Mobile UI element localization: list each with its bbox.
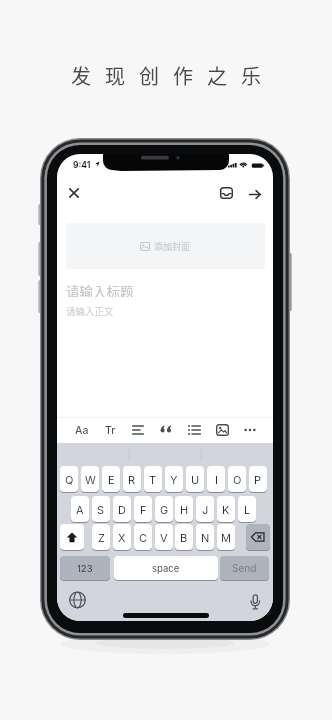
button[interactable]: Tr bbox=[99, 420, 121, 440]
staticText: J bbox=[202, 503, 209, 516]
staticText: 创 bbox=[139, 61, 159, 89]
staticText: space bbox=[152, 563, 180, 574]
button[interactable]: S bbox=[92, 496, 110, 522]
button[interactable]: J bbox=[196, 496, 214, 522]
button[interactable]: R bbox=[123, 466, 141, 492]
button[interactable]: 123 bbox=[60, 556, 110, 580]
button[interactable]: Z bbox=[92, 524, 110, 550]
staticText: C bbox=[139, 531, 148, 544]
staticText: 之 bbox=[207, 61, 227, 89]
staticText: F bbox=[140, 503, 147, 516]
staticText: H bbox=[180, 503, 189, 516]
button[interactable]: 添加封面 bbox=[66, 223, 265, 269]
staticText: Send bbox=[232, 562, 257, 574]
staticText: Z bbox=[98, 531, 105, 544]
staticText: I bbox=[215, 473, 218, 486]
staticText: 9:41 bbox=[73, 160, 91, 170]
button[interactable] bbox=[155, 418, 177, 440]
button[interactable] bbox=[65, 184, 83, 202]
button[interactable]: O bbox=[228, 466, 246, 492]
button[interactable]: space bbox=[114, 556, 218, 580]
button[interactable]: E bbox=[102, 466, 120, 492]
staticText: 请输入正文 bbox=[66, 304, 114, 316]
staticText: Tr bbox=[105, 424, 116, 437]
staticText: A bbox=[76, 503, 84, 516]
button[interactable] bbox=[239, 420, 261, 440]
button[interactable]: G bbox=[155, 496, 173, 522]
button[interactable]: X bbox=[113, 524, 131, 550]
button[interactable]: Send bbox=[220, 556, 269, 580]
button[interactable]: P bbox=[249, 466, 267, 492]
button[interactable] bbox=[217, 185, 235, 201]
button[interactable] bbox=[211, 420, 233, 440]
button[interactable]: B bbox=[175, 524, 193, 550]
staticText: 发 bbox=[71, 61, 91, 89]
button[interactable]: C bbox=[134, 524, 152, 550]
staticText: 乐 bbox=[241, 61, 261, 89]
button[interactable]: I bbox=[207, 466, 225, 492]
staticText: W bbox=[85, 473, 96, 486]
staticText: Y bbox=[170, 473, 178, 486]
staticText: O bbox=[233, 473, 242, 486]
staticText: 现 bbox=[105, 61, 125, 89]
staticText: M bbox=[221, 531, 231, 544]
staticText: 123 bbox=[77, 563, 93, 574]
button[interactable] bbox=[246, 186, 264, 202]
button[interactable] bbox=[60, 524, 84, 550]
staticText: R bbox=[128, 473, 136, 486]
staticText: N bbox=[201, 531, 210, 544]
staticText: P bbox=[254, 473, 262, 486]
staticText: T bbox=[149, 473, 157, 486]
button[interactable]: H bbox=[175, 496, 193, 522]
staticText: V bbox=[160, 531, 168, 544]
staticText: D bbox=[118, 503, 126, 516]
button[interactable]: A bbox=[71, 496, 89, 522]
staticText: L bbox=[244, 503, 251, 516]
button[interactable]: T bbox=[144, 466, 162, 492]
staticText: B bbox=[180, 531, 188, 544]
staticText: K bbox=[222, 503, 230, 516]
button[interactable]: D bbox=[113, 496, 131, 522]
button[interactable]: M bbox=[217, 524, 235, 550]
staticText: 作 bbox=[173, 61, 193, 89]
staticText: Aa bbox=[75, 424, 89, 437]
staticText: S bbox=[97, 503, 105, 516]
button[interactable] bbox=[246, 524, 270, 550]
staticText: X bbox=[118, 531, 126, 544]
staticText: 请输入标题 bbox=[66, 281, 134, 297]
button[interactable] bbox=[127, 420, 149, 440]
button[interactable]: W bbox=[81, 466, 99, 492]
button[interactable]: Y bbox=[165, 466, 183, 492]
button[interactable]: V bbox=[155, 524, 173, 550]
button[interactable]: Q bbox=[60, 466, 78, 492]
staticText: Q bbox=[65, 473, 74, 486]
button[interactable]: L bbox=[238, 496, 256, 522]
button[interactable]: F bbox=[134, 496, 152, 522]
button[interactable]: K bbox=[217, 496, 235, 522]
staticText: U bbox=[191, 473, 200, 486]
button[interactable]: N bbox=[196, 524, 214, 550]
button[interactable]: U bbox=[186, 466, 204, 492]
button[interactable] bbox=[183, 420, 205, 440]
staticText: G bbox=[160, 503, 169, 516]
button[interactable]: Aa bbox=[71, 420, 93, 440]
staticText: 添加封面 bbox=[154, 240, 191, 253]
staticText: E bbox=[108, 473, 115, 486]
